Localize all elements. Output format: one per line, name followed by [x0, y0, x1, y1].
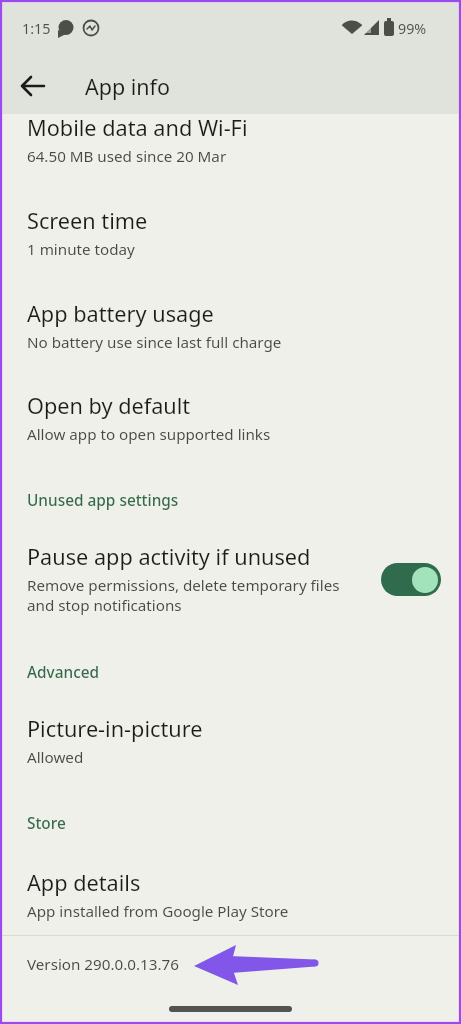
staticText: Picture-in-picture: [27, 714, 203, 744]
button[interactable]: Mobile data and Wi-Fi: [0, 104, 461, 180]
staticText: App battery usage: [27, 299, 214, 329]
staticText: App installed from Google Play Store: [27, 901, 289, 922]
staticText: Advanced: [27, 662, 100, 683]
staticText: 1 minute today: [27, 239, 135, 260]
staticText: and stop notifications: [27, 595, 182, 616]
staticText: Pause app activity if unused: [27, 542, 311, 572]
button[interactable]: App battery usage: [0, 290, 461, 366]
button[interactable]: [381, 563, 441, 596]
button[interactable]: Picture-in-picture: [0, 705, 461, 781]
staticText: App details: [27, 868, 141, 898]
staticText: Mobile data and Wi-Fi: [27, 113, 248, 143]
staticText: Version 290.0.0.13.76: [27, 954, 179, 975]
staticText: Store: [27, 813, 66, 834]
staticText: App info: [85, 72, 171, 101]
staticText: Open by default: [27, 391, 191, 421]
staticText: Allowed: [27, 747, 84, 768]
button[interactable]: Screen time: [0, 197, 461, 273]
staticText: Remove permissions, delete temporary fil…: [27, 575, 340, 596]
staticText: Unused app settings: [27, 490, 179, 511]
staticText: 1:15: [22, 19, 51, 38]
button[interactable]: Open by default: [0, 382, 461, 458]
staticText: Screen time: [27, 206, 148, 236]
staticText: Allow app to open supported links: [27, 424, 271, 445]
button[interactable]: [10, 63, 56, 109]
staticText: 64.50 MB used since 20 Mar: [27, 146, 227, 167]
button[interactable]: Version 290.0.0.13.76: [0, 936, 461, 994]
staticText: 99%: [398, 19, 427, 38]
staticText: No battery use since last full charge: [27, 332, 282, 353]
button[interactable]: App details: [0, 859, 461, 935]
button[interactable]: Pause app activity if unused: [0, 533, 461, 628]
